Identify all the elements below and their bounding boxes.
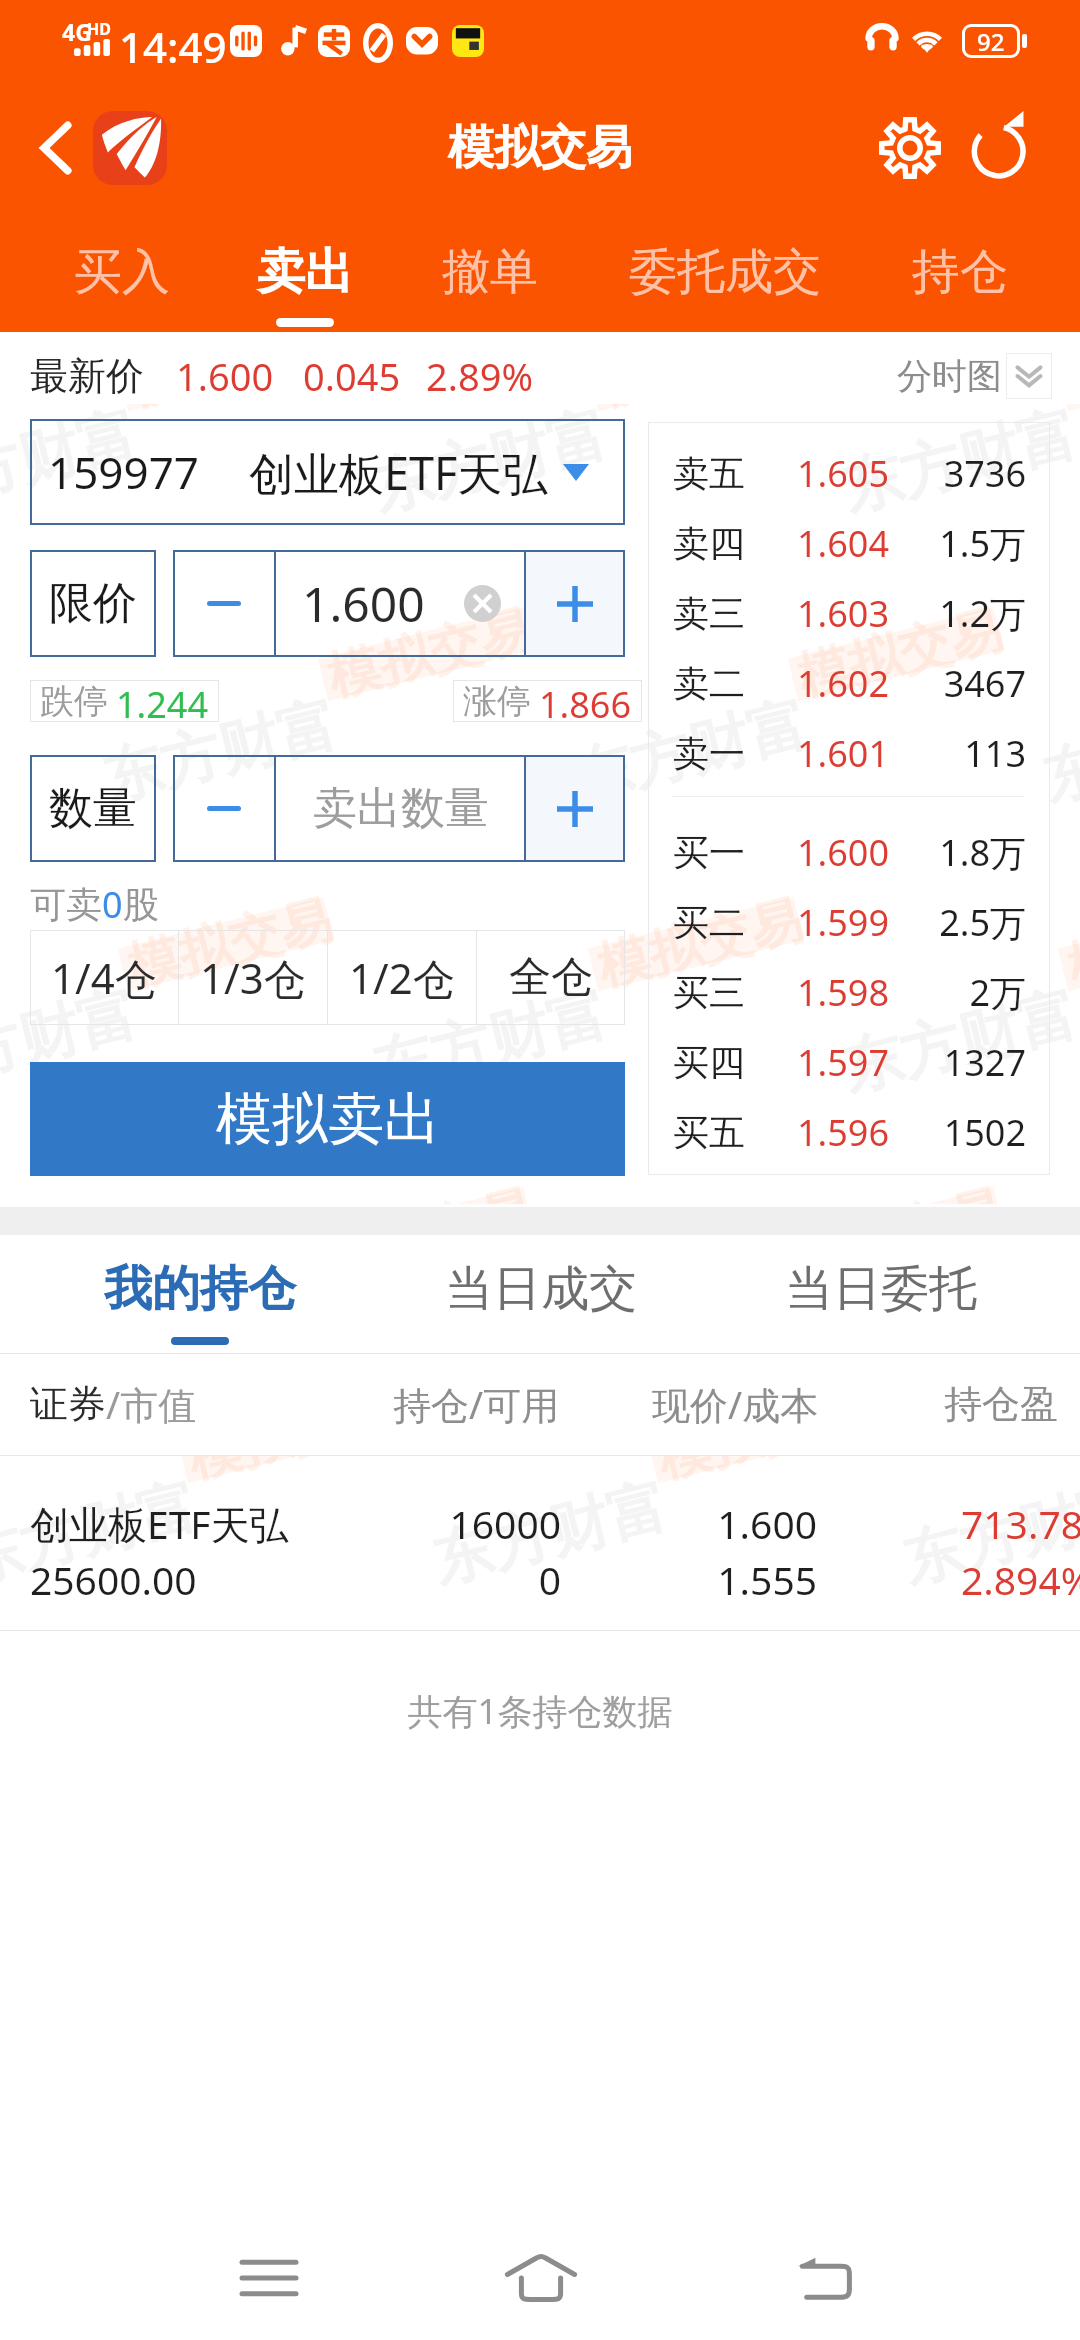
staticText: 模拟交易 [591,404,809,421]
button[interactable]: Decrease [173,755,275,862]
button[interactable]: 持仓 [885,208,1035,332]
button[interactable]: App logo [93,111,167,185]
button[interactable]: 159977 [30,419,625,525]
staticText: 1.5万 [939,519,1026,568]
button[interactable]: Home [461,2216,621,2340]
staticText: 创业板ETF天弘 [249,442,548,503]
staticText: 持仓 [912,242,1008,302]
staticText: 1.598 [748,968,938,1017]
staticText: 我的持仓 [104,1259,296,1319]
button[interactable]: Back [744,2216,904,2340]
button[interactable]: 1/3仓 [178,930,327,1025]
button[interactable]: 我的持仓 [60,1235,340,1345]
staticText: 模拟交易 [121,887,339,1001]
staticText: 东方财富 [834,976,1080,1108]
staticText: 0 [361,1553,561,1606]
staticText: 持仓盈 [944,1380,1058,1428]
staticText: 4G [62,16,92,47]
staticText: 14:49 [119,18,227,75]
staticText: 159977 [48,442,200,502]
staticText: 共有1条持仓数据 [0,1687,1080,1735]
staticText: 1.605 [748,449,938,498]
button[interactable]: 1/4仓 [30,930,178,1025]
button[interactable]: 卖五 [648,438,1050,508]
staticText: 1.244 [116,680,209,722]
staticText: 模拟卖出 [216,1084,440,1155]
button[interactable]: 卖三 [648,578,1050,648]
staticText: 东方财富 [0,976,146,1108]
button[interactable]: Clear [464,585,501,622]
button[interactable]: 全仓 [476,930,625,1025]
button[interactable]: 创业板ETF天弘 [0,1455,1080,1630]
staticText: 模拟交易 [791,1177,1009,1204]
staticText: 模拟交易 [321,1177,539,1204]
staticText: 东方财富 [0,404,146,528]
staticText: 委托成交 [629,242,821,302]
staticText: 模拟交易 [121,404,339,421]
staticText: 东方财富 [894,1468,1080,1600]
staticText: /市值 [106,1378,197,1430]
staticText: 0.045 [303,350,401,402]
staticText: 92 [977,25,1005,58]
button[interactable]: 卖出 [230,208,380,332]
staticText: 东方财富 [424,1468,676,1600]
staticText: 买四 [673,1040,745,1085]
staticText: 模拟交易 [448,119,632,177]
staticText: 卖一 [673,731,745,776]
staticText: 1.599 [748,898,938,947]
staticText: 2.89% [426,350,533,402]
button[interactable]: 当日成交 [401,1235,681,1345]
button[interactable]: 当日委托 [741,1235,1021,1345]
staticText: 模拟交易 [591,887,809,1001]
staticText: 股 [123,882,159,927]
staticText: 东方财富 [0,1468,206,1600]
staticText: 模拟交易 [651,1456,869,1493]
staticText: 1.600 [617,1497,817,1550]
button[interactable]: 限价 [30,550,156,657]
button[interactable]: 卖二 [648,648,1050,718]
staticText: 涨停 [463,680,531,722]
button[interactable]: 买五 [648,1097,1050,1167]
button[interactable]: 买入 [47,208,197,332]
button[interactable]: 撤单 [415,208,565,332]
button[interactable]: 卖一 [648,718,1050,788]
button[interactable]: Increase [525,550,625,657]
button[interactable]: 委托成交 [610,208,840,332]
button[interactable]: 数量 [30,755,156,862]
staticText: 1502 [943,1108,1026,1157]
staticText: 2万 [969,968,1026,1017]
staticText: 可卖 [30,882,102,927]
button[interactable]: 买四 [648,1027,1050,1097]
staticText: 1.600 [176,350,274,402]
button[interactable]: Refresh [959,88,1043,208]
button[interactable]: Recents [189,2216,349,2340]
staticText: 模拟交易 [1061,404,1080,421]
staticText: 创业板ETF天弘 [30,1497,350,1550]
staticText: 0 [102,880,123,929]
staticText: 全仓 [509,951,593,1004]
button[interactable]: Increase [525,755,625,862]
staticText: 1/4仓 [51,949,157,1006]
button[interactable]: 1/2仓 [327,930,476,1025]
button[interactable]: 模拟卖出 [30,1062,625,1176]
staticText: HD [87,18,111,40]
staticText: 分时图 [897,354,1002,398]
button[interactable]: 跌停 [40,680,209,722]
button[interactable]: 卖四 [648,508,1050,578]
button[interactable]: 买三 [648,957,1050,1027]
staticText: 买五 [673,1110,745,1155]
button[interactable]: 涨停 [463,680,632,722]
button[interactable]: Decrease [173,550,275,657]
staticText: 当日成交 [445,1259,637,1319]
button[interactable]: 买一 [648,817,1050,887]
button[interactable]: 分时图 [897,353,1052,399]
button[interactable]: Settings [868,88,952,208]
button[interactable]: 买二 [648,887,1050,957]
staticText: 买二 [673,900,745,945]
staticText: 1.2万 [939,589,1026,638]
button[interactable]: Back [18,109,96,187]
staticText: 当日委托 [785,1259,977,1319]
staticText: 卖四 [673,521,745,566]
staticText: 1.597 [748,1038,938,1087]
staticText: 买一 [673,830,745,875]
